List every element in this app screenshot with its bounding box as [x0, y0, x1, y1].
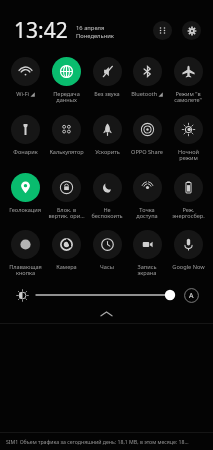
- staticText: Bluetooth ◢: [131, 90, 163, 98]
- staticText: Понедельник: [76, 32, 114, 40]
- button[interactable]: Expand: [0, 307, 213, 321]
- staticText: Реж. энергосбер.: [172, 206, 205, 220]
- staticText: A: [189, 291, 194, 301]
- button[interactable]: OPPO Share: [128, 113, 166, 156]
- button[interactable]: Камера: [47, 228, 85, 271]
- staticText: Ускорить: [95, 148, 120, 156]
- button[interactable]: Передача данных: [47, 55, 85, 104]
- staticText: Точка доступа: [136, 206, 158, 220]
- button[interactable]: Brightness: [14, 287, 30, 303]
- staticText: Камера: [56, 263, 77, 271]
- button[interactable]: Режим "в самолете": [169, 55, 207, 104]
- button[interactable]: Не беспокоить: [88, 171, 126, 220]
- staticText: 16 апреля: [76, 24, 105, 32]
- staticText: Передача данных: [53, 90, 80, 104]
- button[interactable]: Ускорить: [88, 113, 126, 156]
- button[interactable]: Auto brightness: [184, 288, 199, 303]
- staticText: Блок. в вертик. ори…: [48, 206, 85, 220]
- staticText: Запись экрана: [137, 263, 157, 277]
- staticText: SIM1 Объем трафика за сегодняшний день: …: [6, 438, 189, 445]
- button[interactable]: Settings: [182, 21, 201, 40]
- button[interactable]: Edit tiles: [153, 21, 172, 40]
- button[interactable]: Реж. энергосбер.: [169, 171, 207, 220]
- button[interactable]: Точка доступа: [128, 171, 166, 220]
- staticText: Часы: [100, 263, 114, 271]
- button[interactable]: Bluetooth ◢: [128, 55, 166, 98]
- staticText: Ночной режим: [178, 148, 199, 162]
- button[interactable]: Ночной режим: [169, 113, 207, 162]
- staticText: Без звука: [94, 90, 120, 98]
- staticText: Режим "в самолете": [174, 90, 202, 104]
- staticText: OPPO Share: [131, 148, 163, 156]
- button[interactable]: Brightness slider: [36, 286, 177, 304]
- button[interactable]: Геолокация: [6, 171, 44, 214]
- staticText: 13:42: [14, 16, 68, 45]
- staticText: Плавающая кнопка: [9, 263, 42, 277]
- staticText: Фонарик: [13, 148, 38, 156]
- button[interactable]: Часы: [88, 228, 126, 271]
- button[interactable]: Блок. в вертик. ори…: [47, 171, 85, 220]
- staticText: Wi-Fi ◢: [16, 90, 35, 98]
- button[interactable]: Google Now: [169, 228, 207, 271]
- button[interactable]: Калькулятор: [47, 113, 85, 156]
- button[interactable]: Без звука: [88, 55, 126, 98]
- staticText: Геолокация: [9, 206, 41, 214]
- staticText: Калькулятор: [49, 148, 84, 156]
- staticText: Не беспокоить: [91, 206, 123, 220]
- button[interactable]: Wi-Fi ◢: [6, 55, 44, 98]
- button[interactable]: Фонарик: [6, 113, 44, 156]
- staticText: Google Now: [172, 263, 205, 271]
- button[interactable]: Запись экрана: [128, 228, 166, 277]
- button[interactable]: Плавающая кнопка: [6, 228, 44, 277]
